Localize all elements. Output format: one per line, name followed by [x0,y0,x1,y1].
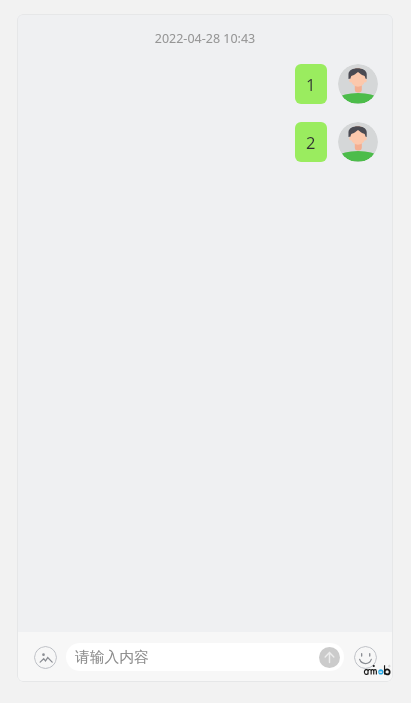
button[interactable]: 1 [295,64,327,104]
button[interactable]: 请输入内容 [66,643,344,671]
staticText: 请输入内容 [75,648,149,667]
staticText: 2 [306,131,316,153]
staticText: 2022-04-28 10:43 [17,30,393,47]
staticText: 1 [306,73,316,95]
button[interactable]: Emoji [354,646,377,669]
button[interactable]: User avatar [338,64,378,104]
button[interactable]: 2 [295,122,327,162]
button[interactable]: Add image [34,646,57,669]
button[interactable]: User avatar [338,122,378,162]
button[interactable]: Send [319,647,340,668]
